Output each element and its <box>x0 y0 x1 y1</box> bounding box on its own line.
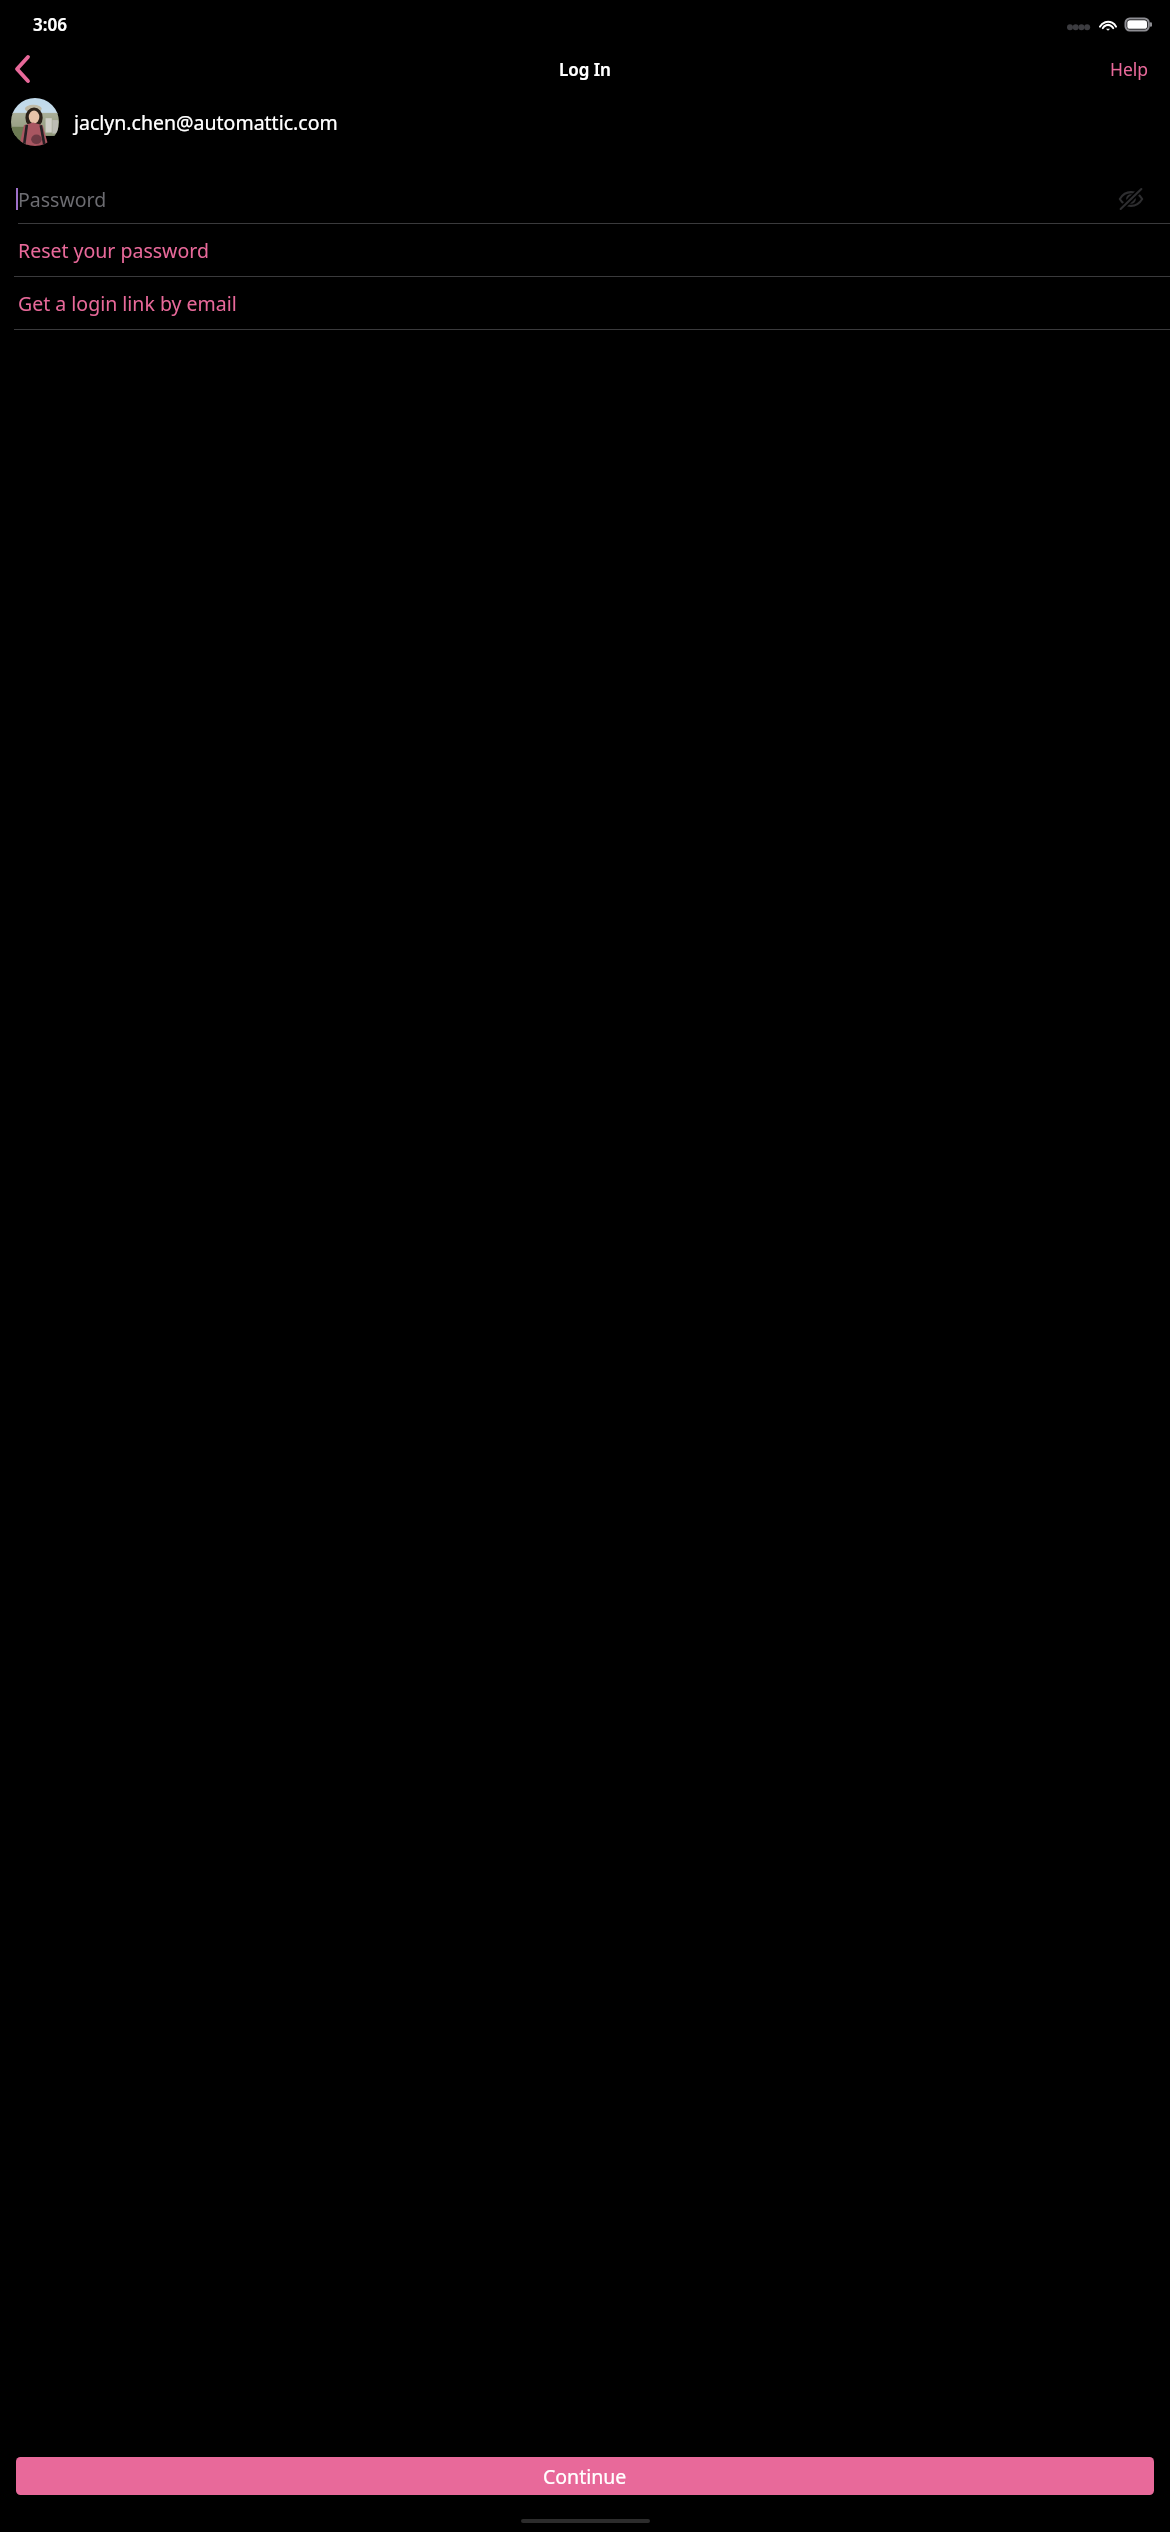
staticText: Password <box>18 186 107 213</box>
staticText: 3:06 <box>33 13 67 36</box>
button[interactable]: Reset your password <box>0 224 1170 276</box>
staticText: Help <box>1110 57 1149 81</box>
staticText: Log In <box>559 58 611 81</box>
button[interactable]: Help <box>1107 51 1152 87</box>
staticText: Reset your password <box>18 237 209 264</box>
staticText: Continue <box>543 2463 627 2490</box>
staticText: Get a login link by email <box>18 290 237 317</box>
button[interactable]: Password <box>0 175 1170 223</box>
button[interactable]: Continue <box>16 2457 1154 2495</box>
staticText: jaclyn.chen@automattic.com <box>74 109 338 136</box>
button[interactable]: Show password <box>1114 182 1148 216</box>
button[interactable]: Back <box>0 47 44 91</box>
button[interactable]: Get a login link by email <box>0 277 1170 329</box>
